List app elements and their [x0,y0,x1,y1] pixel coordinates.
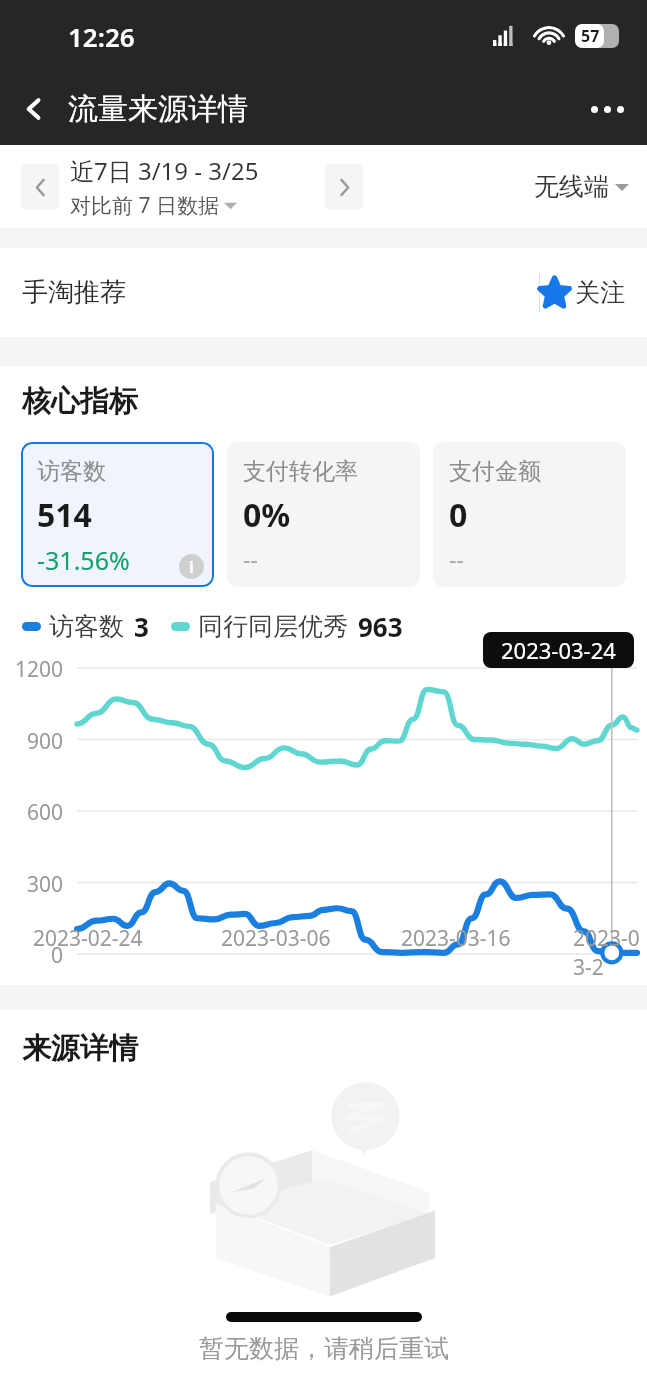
button[interactable]: More options [581,83,633,135]
staticText: 访客数 [49,611,124,642]
button[interactable]: 支付金额 [433,442,626,587]
staticText: 600 [27,798,64,827]
staticText: 2023-03-06 [221,924,331,953]
staticText: 300 [27,870,64,899]
staticText: 支付金额 [449,457,541,486]
staticText: 同行同层优秀 [198,611,348,642]
staticText: 近7日 3/19 - 3/25 [70,154,259,187]
staticText: 2023-03-16 [401,924,511,953]
staticText: 核心指标 [22,383,138,420]
button[interactable]: Back [10,85,58,133]
staticText: 流量来源详情 [68,90,248,128]
staticText: 2023-03-2 [573,924,647,982]
staticText: -- [449,543,464,574]
staticText: 1200 [15,655,64,684]
staticText: 3 [134,609,149,644]
staticText: 无线端 [534,171,609,202]
staticText: i [189,556,194,578]
staticText: 暂无数据，请稍后重试 [199,1333,449,1364]
button[interactable]: Previous period [21,164,59,210]
button[interactable]: Info [179,554,204,579]
staticText: -- [243,543,258,574]
staticText: 关注 [575,277,625,308]
staticText: 0% [243,493,291,537]
button[interactable]: 无线端 [534,171,629,202]
staticText: 2023-03-24 [501,635,616,665]
staticText: 514 [37,493,92,537]
staticText: 2023-02-24 [33,924,143,953]
staticText: 支付转化率 [243,457,358,486]
staticText: 57 [581,25,600,47]
staticText: 对比前 7 日数据 [70,191,219,220]
button[interactable]: Next period [325,164,363,210]
staticText: 12:26 [68,19,135,54]
staticText: 访客数 [37,457,106,486]
button[interactable]: 访客数 [21,442,214,587]
button[interactable]: 支付转化率 [227,442,420,587]
staticText: 0 [449,493,468,537]
staticText: -31.56% [37,543,130,577]
staticText: 0 [51,941,64,970]
staticText: 来源详情 [22,1030,138,1067]
staticText: 963 [358,609,403,644]
staticText: 900 [27,727,64,756]
staticText: 手淘推荐 [22,276,126,309]
button[interactable]: 关注 [539,277,625,308]
